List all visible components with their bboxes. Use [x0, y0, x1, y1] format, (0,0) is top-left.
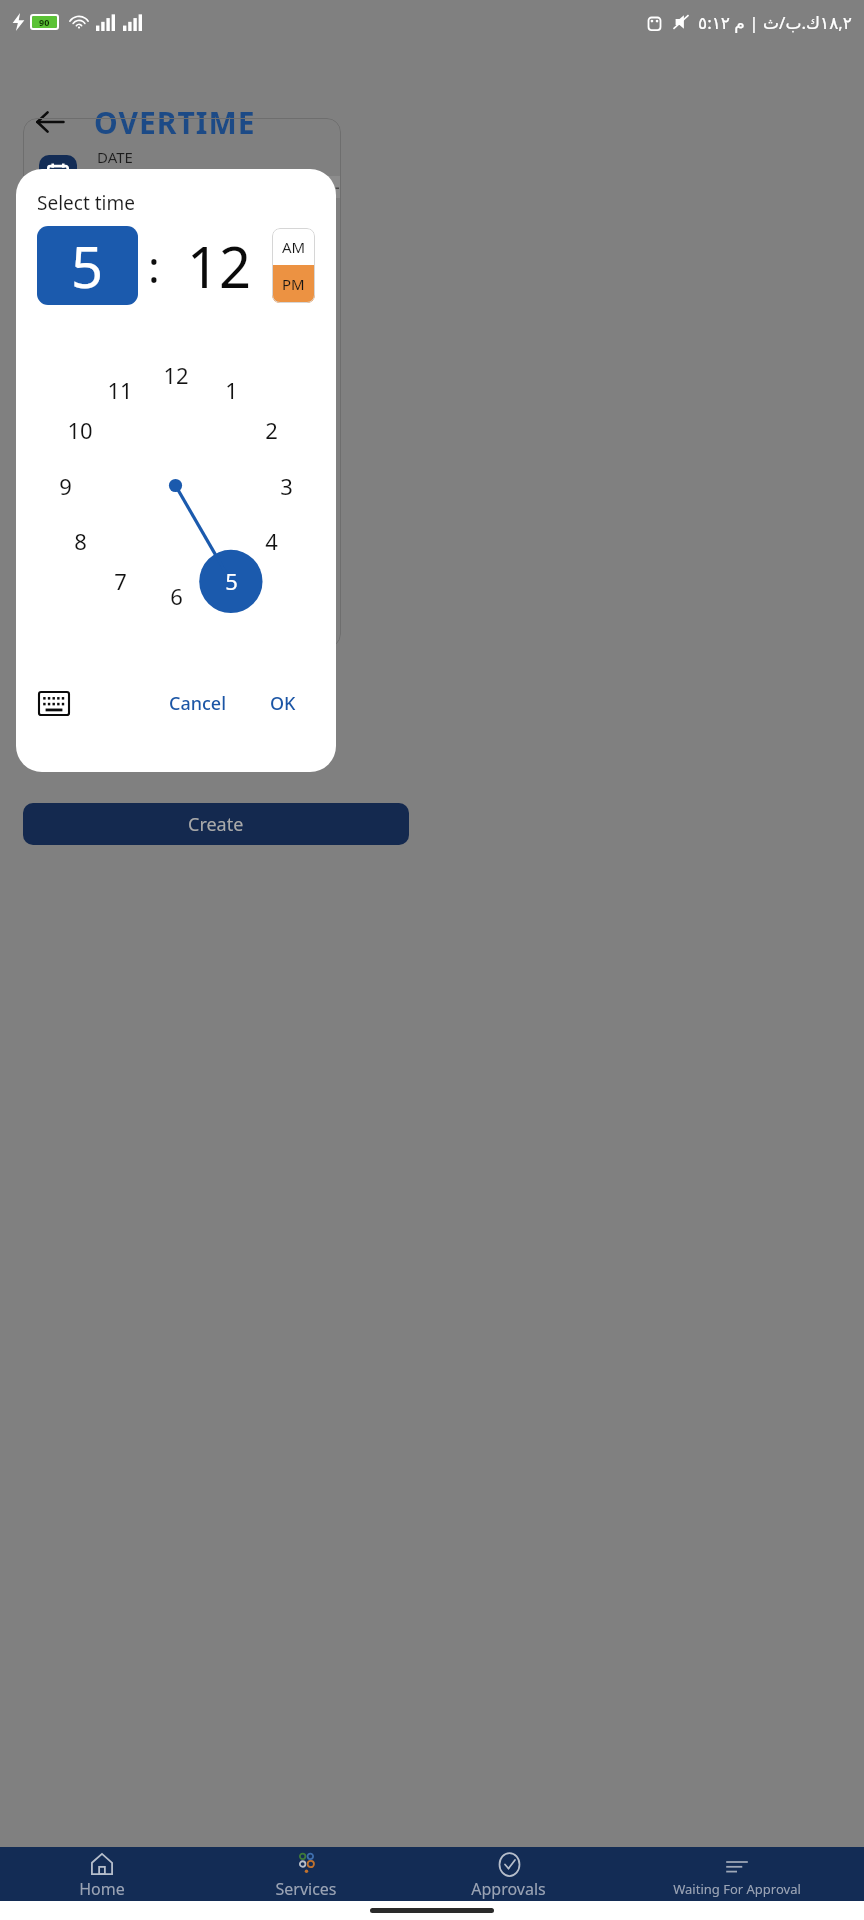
button[interactable]: 5	[208, 562, 254, 600]
button[interactable]: Create	[23, 803, 409, 845]
staticText: OK	[270, 691, 296, 716]
button[interactable]: 6	[153, 577, 199, 615]
staticText: Services	[275, 1878, 337, 1900]
staticText: PM	[282, 274, 305, 294]
staticText: Cancel	[169, 691, 227, 716]
button[interactable]: 11	[97, 371, 143, 409]
staticText: Create	[188, 812, 244, 837]
button[interactable]: 2	[248, 411, 294, 449]
staticText: 5	[225, 566, 238, 596]
button[interactable]: Back	[22, 94, 78, 150]
staticText: ١٨,٢ك.ب/ث | م ٥:١٢	[698, 11, 852, 34]
button[interactable]: Waiting For Approval	[610, 1850, 864, 1898]
staticText: 2	[265, 415, 278, 445]
button[interactable]: 7	[97, 562, 143, 600]
button[interactable]: Approvals	[407, 1848, 610, 1900]
button[interactable]: 8	[57, 522, 103, 560]
staticText: :	[148, 236, 160, 296]
staticText: 12	[163, 360, 189, 390]
button[interactable]: Home	[0, 1848, 204, 1900]
staticText: 6	[170, 581, 183, 611]
staticText: DATE	[97, 147, 133, 167]
button[interactable]: 12	[153, 356, 199, 394]
button[interactable]: 10	[57, 411, 103, 449]
staticText: Select time	[37, 190, 135, 216]
staticText: 12	[187, 228, 252, 304]
staticText: Home	[79, 1878, 125, 1900]
staticText: 11	[107, 375, 133, 405]
staticText: 4	[265, 526, 278, 556]
staticText: 9	[59, 471, 72, 501]
staticText: 1	[225, 375, 238, 405]
staticText: 3	[280, 471, 293, 501]
staticText: 90	[39, 16, 50, 28]
button[interactable]: 12	[169, 226, 270, 305]
staticText: OVERTIME	[94, 102, 256, 143]
staticText: FROM	[97, 177, 140, 197]
staticText: Waiting For Approval	[673, 1880, 801, 1898]
button[interactable]: 5	[37, 226, 138, 305]
button[interactable]: PM	[272, 265, 315, 303]
staticText: --:--	[319, 178, 340, 196]
staticText: Approvals	[471, 1878, 546, 1900]
button[interactable]: --:--	[308, 176, 341, 198]
button[interactable]: Cancel	[162, 682, 234, 724]
staticText: 8	[74, 526, 87, 556]
button[interactable]: 4	[248, 522, 294, 560]
staticText: AM	[282, 237, 306, 257]
button[interactable]: Keyboard input	[32, 681, 76, 725]
button[interactable]: OK	[257, 682, 309, 724]
button[interactable]: 1	[208, 371, 254, 409]
button[interactable]: AM	[272, 228, 315, 265]
button[interactable]: 9	[42, 467, 88, 505]
staticText: 10	[67, 415, 93, 445]
button[interactable]: 3	[263, 467, 309, 505]
staticText: 7	[114, 566, 127, 596]
button[interactable]: Services	[204, 1848, 407, 1900]
staticText: 5	[71, 228, 104, 304]
